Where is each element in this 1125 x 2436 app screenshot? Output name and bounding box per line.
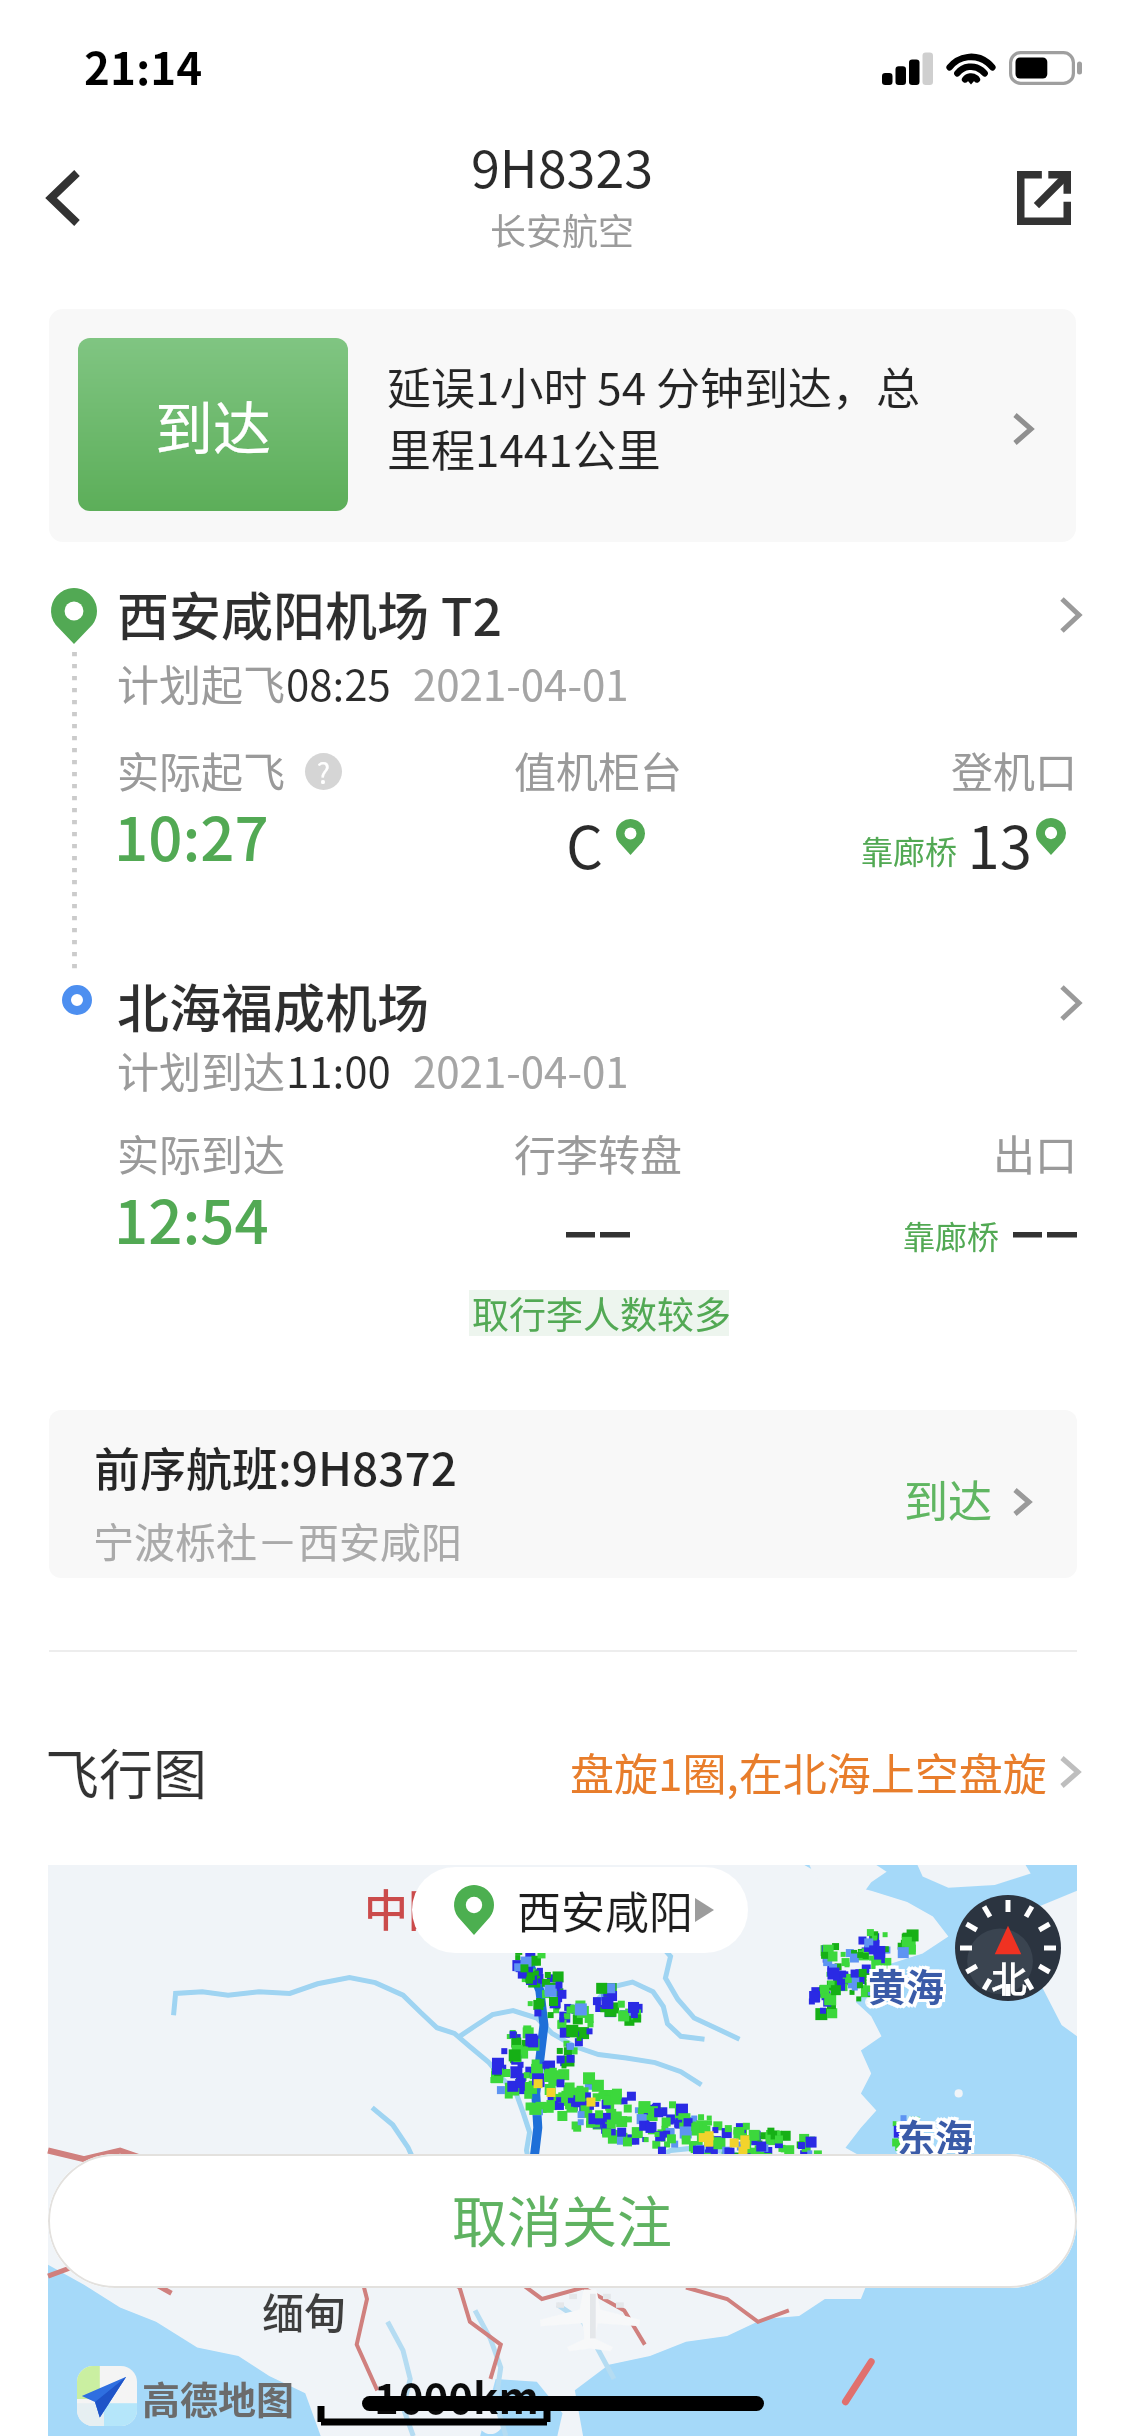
staticText: ? bbox=[313, 752, 334, 790]
button[interactable]: 取消关注 bbox=[48, 2154, 1077, 2288]
staticText: 取消关注 bbox=[452, 2178, 673, 2258]
staticText: 盘旋1圈,在北海上空盘旋 bbox=[570, 1740, 1047, 1804]
button[interactable]: Back bbox=[20, 158, 108, 238]
staticText: 实际起飞 bbox=[117, 739, 286, 800]
staticText: 计划到达 bbox=[117, 1039, 286, 1100]
staticText: 08:25 bbox=[286, 652, 391, 713]
staticText: 西安咸阳机场 T2 bbox=[117, 576, 503, 651]
staticText: 2021-04-01 bbox=[413, 1039, 629, 1100]
staticText: 东海 bbox=[900, 2105, 977, 2160]
staticText: 东海 bbox=[894, 2108, 971, 2163]
staticText: 黄海 bbox=[868, 1960, 945, 2015]
staticText: 中国 bbox=[364, 1876, 452, 1940]
staticText: 前序航班:9H8372 bbox=[94, 1433, 457, 1500]
staticText: 计划起飞 bbox=[117, 652, 286, 713]
button[interactable]: 西安咸阳 bbox=[412, 1867, 748, 1953]
staticText: 东海 bbox=[897, 2108, 974, 2163]
staticText: 出口 bbox=[800, 1122, 1077, 1183]
staticText: 到达 bbox=[904, 1467, 992, 1531]
staticText: 12:54 bbox=[114, 1174, 269, 1261]
staticText: 1000km bbox=[374, 2365, 539, 2426]
button[interactable]: 盘旋1圈,在北海上空盘旋 bbox=[570, 1734, 1081, 1810]
staticText: 靠廊桥 bbox=[861, 827, 958, 873]
staticText: 黄海 bbox=[865, 1954, 942, 2009]
staticText: 2021-04-01 bbox=[413, 652, 629, 713]
staticText: 21:14 bbox=[84, 34, 203, 98]
staticText: 黄海 bbox=[865, 1957, 942, 2012]
button[interactable]: 前序航班:9H8372 bbox=[49, 1410, 1077, 1578]
staticText: 值机柜台 bbox=[430, 739, 766, 800]
staticText: 东海 bbox=[897, 2111, 974, 2166]
staticText: 行李转盘 bbox=[430, 1122, 766, 1183]
staticText: 缅甸 bbox=[262, 2280, 347, 2341]
staticText: 北 bbox=[991, 1951, 1028, 2003]
staticText: 黄海 bbox=[865, 1960, 942, 2015]
staticText: C bbox=[430, 802, 603, 886]
staticText: 黄海 bbox=[871, 1954, 948, 2009]
staticText: 东海 bbox=[894, 2111, 971, 2166]
staticText: 取行李人数较多 bbox=[472, 1286, 731, 1332]
staticText: 延误1小时 54 分钟到达，总 里程1441公里 bbox=[387, 354, 1027, 479]
staticText: 黄海 bbox=[871, 1957, 948, 2012]
staticText: 黄海 bbox=[871, 1960, 948, 2015]
staticText: 宁波栎社－西安咸阳 bbox=[93, 1510, 462, 1569]
staticText: 10:27 bbox=[114, 791, 269, 878]
staticText: 9H8323 bbox=[471, 128, 654, 203]
staticText: 实际到达 bbox=[117, 1122, 286, 1183]
staticText: 黄海 bbox=[868, 1957, 945, 2012]
staticText: 到达 bbox=[155, 383, 272, 467]
staticText: 西安咸阳 bbox=[517, 1878, 693, 1942]
staticText: 东海 bbox=[894, 2105, 971, 2160]
staticText: 靠廊桥 bbox=[903, 1212, 1000, 1258]
staticText: 登机口 bbox=[800, 739, 1077, 800]
staticText: 东海 bbox=[900, 2108, 977, 2163]
staticText: 东海 bbox=[900, 2111, 977, 2166]
staticText: 北海福成机场 bbox=[117, 968, 430, 1043]
button[interactable]: Share bbox=[994, 158, 1094, 238]
staticText: 长安航空 bbox=[490, 203, 635, 255]
staticText: 高德地图 bbox=[142, 2370, 295, 2425]
staticText: 13 bbox=[800, 802, 1032, 886]
staticText: 黄海 bbox=[868, 1954, 945, 2009]
button[interactable]: 到达 bbox=[49, 309, 1076, 542]
staticText: 飞行图 bbox=[45, 1732, 207, 1810]
staticText: 11:00 bbox=[286, 1039, 391, 1100]
staticText: 东海 bbox=[897, 2105, 974, 2160]
